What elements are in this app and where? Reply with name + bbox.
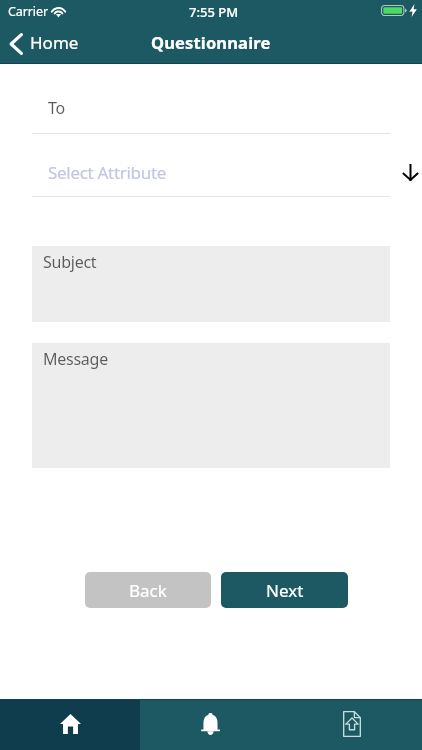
staticText: Questionnaire — [151, 31, 271, 53]
button[interactable]: Notifications — [140, 699, 281, 750]
staticText: Home — [30, 31, 79, 54]
button[interactable]: Message — [32, 343, 390, 468]
staticText: Next — [266, 579, 304, 602]
staticText: Back — [129, 579, 167, 602]
staticText: Message — [43, 348, 108, 370]
staticText: Select Attribute — [48, 161, 167, 184]
button[interactable]: Subject — [32, 246, 390, 322]
button[interactable]: Open attribute dropdown — [396, 158, 422, 187]
staticText: 7:55 PM — [189, 3, 239, 21]
button[interactable]: Home — [2, 28, 89, 59]
button[interactable]: Next — [221, 572, 348, 608]
button[interactable]: Home — [0, 699, 140, 750]
button[interactable]: Back — [85, 572, 211, 608]
button[interactable]: Upload document — [281, 699, 422, 750]
staticText: To — [48, 97, 65, 119]
staticText: Carrier — [8, 3, 48, 20]
staticText: Subject — [43, 251, 97, 273]
